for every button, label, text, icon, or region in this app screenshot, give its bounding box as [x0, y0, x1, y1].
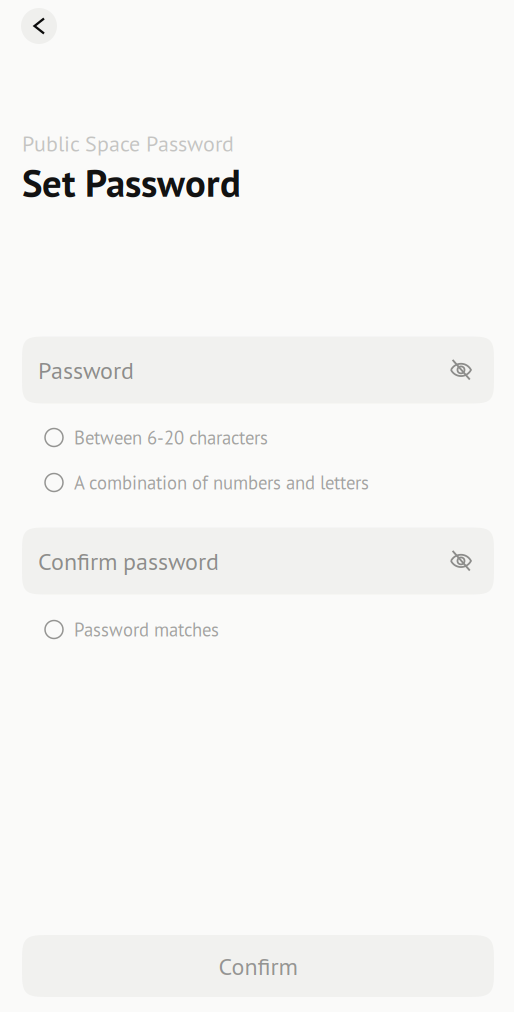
staticText: Public Space Password	[22, 129, 234, 157]
staticText: Confirm	[218, 950, 297, 982]
button[interactable]: Confirm	[22, 935, 494, 997]
staticText: Set Password	[22, 157, 241, 207]
button[interactable]: Show password	[446, 355, 476, 385]
staticText: A combination of numbers and letters	[74, 470, 369, 495]
button[interactable]: Back	[21, 8, 57, 44]
staticText: Between 6-20 characters	[74, 425, 268, 450]
button[interactable]: Show password	[446, 546, 476, 576]
staticText: Password matches	[74, 617, 219, 642]
staticText: Password	[38, 354, 134, 386]
staticText: Confirm password	[38, 545, 219, 577]
